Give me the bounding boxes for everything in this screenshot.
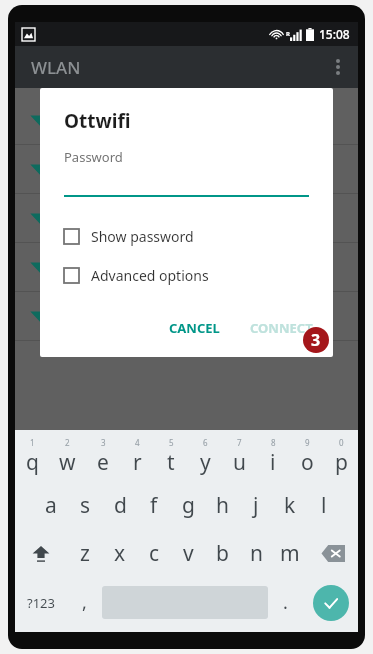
staticText: n xyxy=(250,539,263,568)
button[interactable]: n xyxy=(239,529,273,578)
staticText: o xyxy=(301,448,314,477)
staticText: r xyxy=(133,448,142,477)
staticText: . xyxy=(283,590,288,615)
staticText: Ottwifi xyxy=(64,108,131,134)
staticText: , xyxy=(82,590,87,615)
staticText: CANCEL xyxy=(169,319,220,337)
button[interactable]: 4 xyxy=(120,433,154,481)
button[interactable]: Enter xyxy=(303,578,358,627)
staticText: Advanced options xyxy=(91,266,209,285)
button[interactable]: . xyxy=(268,578,303,627)
staticText: 6 xyxy=(203,437,208,448)
button[interactable]: m xyxy=(273,529,307,578)
staticText: R xyxy=(286,30,290,38)
staticText: Show password xyxy=(91,227,194,246)
staticText: 4 xyxy=(135,437,140,448)
button[interactable]: DIRECT-bi-4e01572ddfb6 xyxy=(15,292,358,340)
button[interactable]: c xyxy=(137,529,171,578)
staticText: x xyxy=(114,539,126,568)
button[interactable]: Show password xyxy=(40,223,333,250)
button[interactable]: More options xyxy=(318,47,358,87)
staticText: c xyxy=(149,539,160,568)
button[interactable]: Ottwifi-guest xyxy=(15,145,358,193)
staticText: i xyxy=(270,448,276,477)
button[interactable]: ?123 xyxy=(15,578,67,627)
staticText: Ottwifi xyxy=(73,257,121,277)
button[interactable]: 7 xyxy=(222,433,256,481)
staticText: l xyxy=(321,491,327,520)
staticText: d xyxy=(114,491,127,520)
staticText: 3 xyxy=(101,437,106,448)
staticText: k xyxy=(284,491,296,520)
button[interactable]: 2 xyxy=(50,433,85,481)
staticText: v xyxy=(183,539,194,568)
staticText: w xyxy=(59,448,76,477)
staticText: e xyxy=(97,448,109,477)
button[interactable]: a xyxy=(33,481,68,529)
button[interactable]: l xyxy=(307,481,341,529)
staticText: 0 xyxy=(339,437,344,448)
button[interactable]: b xyxy=(205,529,239,578)
staticText: 2 xyxy=(65,437,70,448)
button[interactable]: 3 xyxy=(85,433,120,481)
button[interactable]: 6 xyxy=(188,433,222,481)
staticText: p xyxy=(335,448,348,477)
staticText: 8 xyxy=(271,437,276,448)
staticText: DIRECT-bi-4e01572ddfb6 xyxy=(65,306,241,326)
staticText: CONNECT xyxy=(250,319,313,337)
button[interactable]: s xyxy=(68,481,103,529)
staticText: ?123 xyxy=(27,594,55,612)
button[interactable]: Backspace xyxy=(307,529,358,578)
button[interactable]: v xyxy=(171,529,205,578)
staticText: j xyxy=(253,491,259,520)
button[interactable]: f xyxy=(137,481,171,529)
staticText: s xyxy=(80,491,91,520)
staticText: 1 xyxy=(30,437,35,448)
button[interactable]: h xyxy=(205,481,239,529)
staticText: 15:08 xyxy=(319,26,350,42)
staticText: z xyxy=(80,539,90,568)
button[interactable]: k xyxy=(273,481,307,529)
staticText: a xyxy=(45,491,57,520)
button[interactable]: 8 xyxy=(256,433,290,481)
staticText: b xyxy=(216,539,229,568)
button[interactable]: j xyxy=(239,481,273,529)
staticText: 5 xyxy=(169,437,174,448)
button[interactable]: , xyxy=(67,578,102,627)
staticText: f xyxy=(150,491,158,520)
button[interactable]: Ottwifi xyxy=(15,194,358,242)
button[interactable]: x xyxy=(102,529,137,578)
button[interactable]: 0 xyxy=(324,433,358,481)
staticText: q xyxy=(26,448,39,477)
button[interactable]: 1 xyxy=(15,433,50,481)
staticText: WLAN xyxy=(31,56,81,79)
staticText: 7 xyxy=(237,437,242,448)
staticText: u xyxy=(233,448,246,477)
staticText: Ottwifi xyxy=(73,110,121,130)
staticText: m xyxy=(280,539,300,568)
button[interactable]: Ottwifi xyxy=(15,96,358,144)
staticText: Password xyxy=(64,148,123,166)
staticText: 9 xyxy=(305,437,310,448)
staticText: t xyxy=(167,448,175,477)
staticText: h xyxy=(216,491,229,520)
button[interactable]: Shift xyxy=(15,529,67,578)
staticText: 3 xyxy=(311,329,321,351)
button[interactable]: 5 xyxy=(154,433,188,481)
button[interactable]: CONNECT xyxy=(238,311,325,345)
button[interactable]: Ottwifi xyxy=(15,243,358,291)
button[interactable]: CANCEL xyxy=(157,311,232,345)
staticText: g xyxy=(182,491,195,520)
button[interactable]: Advanced options xyxy=(40,262,333,289)
staticText: Ottwifi-guest xyxy=(65,159,157,179)
button[interactable]: z xyxy=(67,529,102,578)
staticText: y xyxy=(200,448,211,477)
button[interactable]: d xyxy=(103,481,137,529)
button[interactable]: g xyxy=(171,481,205,529)
button[interactable]: 9 xyxy=(290,433,324,481)
